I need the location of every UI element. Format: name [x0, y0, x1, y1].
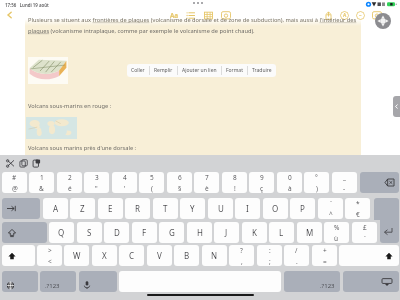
button[interactable]: 9 — [249, 172, 274, 193]
button[interactable]: K — [242, 222, 267, 243]
button[interactable]: tab — [2, 198, 40, 219]
button[interactable]: Schéma du volcanisme — [28, 57, 68, 84]
button[interactable]: Y — [180, 198, 205, 219]
button[interactable]: O — [263, 198, 288, 219]
staticText: Traduire — [252, 67, 272, 74]
button[interactable]: Table — [201, 9, 215, 21]
button[interactable]: £ — [352, 222, 377, 243]
button[interactable]: Return — [380, 222, 399, 243]
staticText: , — [241, 257, 243, 266]
button[interactable]: 8 — [222, 172, 247, 193]
button[interactable]: + — [312, 245, 337, 266]
button[interactable]: 0 — [277, 172, 302, 193]
button[interactable]: M — [297, 222, 322, 243]
button[interactable]: Format — [222, 64, 247, 77]
button[interactable]: C — [119, 245, 144, 266]
button[interactable]: caps — [2, 222, 47, 243]
staticText: plaques (volcanisme intraplaque, comme p… — [28, 27, 255, 35]
button[interactable]: ° — [304, 172, 329, 193]
staticText: # — [12, 173, 17, 182]
button[interactable]: A — [43, 198, 68, 219]
button[interactable]: T — [153, 198, 178, 219]
button[interactable]: H — [187, 222, 212, 243]
staticText: P — [300, 203, 305, 214]
button[interactable]: Multitasking — [193, 2, 203, 4]
button[interactable]: Open side panel — [393, 96, 400, 117]
button[interactable]: I — [235, 198, 260, 219]
button[interactable]: shiftL — [2, 245, 35, 266]
button[interactable]: Ajouter un lien — [178, 64, 221, 77]
button[interactable]: Remplir — [150, 64, 177, 77]
staticText: ' — [124, 184, 126, 193]
button[interactable]: Z — [70, 198, 95, 219]
staticText: / — [295, 246, 298, 255]
button[interactable]: 4 — [112, 172, 137, 193]
button[interactable]: F — [132, 222, 157, 243]
staticText: : — [269, 246, 271, 255]
button[interactable]: Paste — [30, 157, 42, 169]
button[interactable]: Camera — [219, 9, 233, 21]
staticText: ¨ — [329, 199, 333, 208]
button[interactable]: D — [104, 222, 129, 243]
staticText: Format — [226, 67, 243, 74]
button[interactable]: : — [257, 245, 282, 266]
button[interactable]: R — [125, 198, 150, 219]
staticText: - — [343, 184, 346, 193]
button[interactable]: 6 — [167, 172, 192, 193]
staticText: K — [252, 227, 257, 238]
button[interactable]: * — [345, 198, 370, 219]
button[interactable]: 5 — [139, 172, 164, 193]
button[interactable]: W — [64, 245, 89, 266]
button[interactable]: globe — [2, 271, 38, 292]
button[interactable]: Markup — [337, 9, 351, 21]
button[interactable]: > — [37, 245, 62, 266]
button[interactable]: 3 — [84, 172, 109, 193]
staticText: £ — [363, 223, 367, 232]
button[interactable]: 1 — [29, 172, 54, 193]
button[interactable]: G — [159, 222, 184, 243]
button[interactable]: 2 — [57, 172, 82, 193]
button[interactable]: shiftR — [339, 245, 399, 266]
button[interactable]: V — [147, 245, 172, 266]
button[interactable]: L — [269, 222, 294, 243]
button[interactable]: 7 — [194, 172, 219, 193]
button[interactable]: S — [77, 222, 102, 243]
button[interactable]: New note — [370, 9, 384, 21]
button[interactable]: P — [290, 198, 315, 219]
button[interactable]: Collapse — [353, 9, 367, 21]
button[interactable]: Copy — [17, 157, 29, 169]
button[interactable]: ? — [229, 245, 254, 266]
staticText: ^ — [329, 210, 333, 219]
staticText: & — [39, 184, 44, 193]
button[interactable]: .?123 — [40, 271, 76, 292]
button[interactable]: backspace — [360, 172, 399, 193]
button[interactable]: B — [174, 245, 199, 266]
button[interactable]: mic — [79, 271, 117, 292]
button[interactable]: ¨ — [318, 198, 343, 219]
button[interactable]: dismiss — [343, 271, 399, 292]
staticText: Ajouter un lien — [182, 67, 217, 74]
button[interactable]: Q — [49, 222, 74, 243]
button[interactable]: .?123 — [284, 271, 340, 292]
staticText: ç — [260, 184, 264, 193]
button[interactable]: _ — [332, 172, 357, 193]
button[interactable]: % — [324, 222, 349, 243]
button[interactable]: E — [98, 198, 123, 219]
button[interactable]: Format text — [167, 9, 181, 21]
button[interactable]: N — [202, 245, 227, 266]
button[interactable]: / — [284, 245, 309, 266]
button[interactable]: X — [92, 245, 117, 266]
button[interactable]: Carte des volcans sous-marins — [26, 117, 77, 139]
button[interactable]: Coller — [127, 64, 149, 77]
button[interactable]: Traduire — [248, 64, 276, 77]
button[interactable]: J — [214, 222, 239, 243]
button[interactable]: # — [2, 172, 27, 193]
staticText: I — [246, 203, 249, 214]
staticText: 5 — [150, 173, 154, 182]
button[interactable]: Checklist — [183, 9, 197, 21]
button[interactable]: AssistiveTouch — [375, 13, 391, 29]
button[interactable]: Share — [321, 9, 335, 21]
button[interactable]: Cut — [4, 157, 16, 169]
button[interactable]: U — [208, 198, 233, 219]
